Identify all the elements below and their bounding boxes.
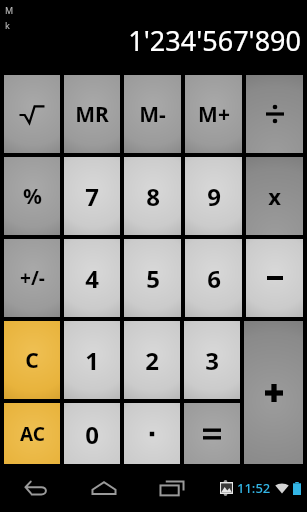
staticText: k: [5, 19, 10, 31]
button[interactable]: 1: [64, 321, 120, 399]
staticText: 11:52: [237, 479, 271, 497]
button[interactable]: Back: [8, 464, 64, 512]
button[interactable]: C: [4, 321, 60, 399]
button[interactable]: +/-: [4, 239, 60, 317]
staticText: 2: [145, 344, 159, 377]
button[interactable]: Minus: [246, 239, 303, 317]
button[interactable]: M-: [124, 75, 181, 153]
button[interactable]: Plus: [244, 321, 303, 465]
staticText: 7: [85, 180, 99, 213]
staticText: 6: [207, 262, 221, 295]
staticText: 0: [85, 418, 99, 451]
staticText: M+: [198, 100, 230, 129]
other: Minus: [265, 271, 285, 285]
staticText: 9: [207, 180, 221, 213]
other: Equals: [202, 426, 222, 442]
button[interactable]: 7: [64, 157, 120, 235]
staticText: 1'234'567'890: [128, 22, 301, 59]
staticText: C: [25, 346, 39, 375]
button[interactable]: 8: [124, 157, 181, 235]
button[interactable]: Home: [76, 464, 132, 512]
staticText: 1: [85, 344, 99, 377]
button[interactable]: x: [246, 157, 303, 235]
other: Divide: [265, 104, 285, 124]
button[interactable]: MR: [64, 75, 120, 153]
staticText: %: [23, 182, 42, 211]
staticText: AC: [20, 421, 45, 447]
button[interactable]: 2: [124, 321, 180, 399]
staticText: MR: [75, 100, 109, 129]
button[interactable]: 6: [185, 239, 242, 317]
button[interactable]: Decimal point: [124, 403, 180, 465]
staticText: 4: [85, 262, 99, 295]
button[interactable]: More options: [208, 464, 242, 512]
staticText: M: [5, 4, 14, 16]
staticText: 5: [146, 262, 160, 295]
other: Plus: [263, 382, 285, 404]
button[interactable]: M+: [185, 75, 242, 153]
button[interactable]: Equals: [184, 403, 240, 465]
button[interactable]: Square root: [4, 75, 60, 153]
button[interactable]: 0: [64, 403, 120, 465]
staticText: M-: [139, 100, 166, 129]
button[interactable]: 3: [184, 321, 240, 399]
staticText: x: [268, 181, 281, 211]
button[interactable]: 5: [124, 239, 181, 317]
button[interactable]: 4: [64, 239, 120, 317]
other: Decimal point: [147, 429, 157, 439]
staticText: 3: [205, 344, 219, 377]
other: Square root: [19, 104, 45, 124]
button[interactable]: Divide: [246, 75, 303, 153]
staticText: 8: [146, 180, 160, 213]
button[interactable]: Recent apps: [144, 464, 200, 512]
button[interactable]: %: [4, 157, 60, 235]
button[interactable]: AC: [4, 403, 60, 465]
button[interactable]: 9: [185, 157, 242, 235]
staticText: +/-: [20, 265, 45, 291]
